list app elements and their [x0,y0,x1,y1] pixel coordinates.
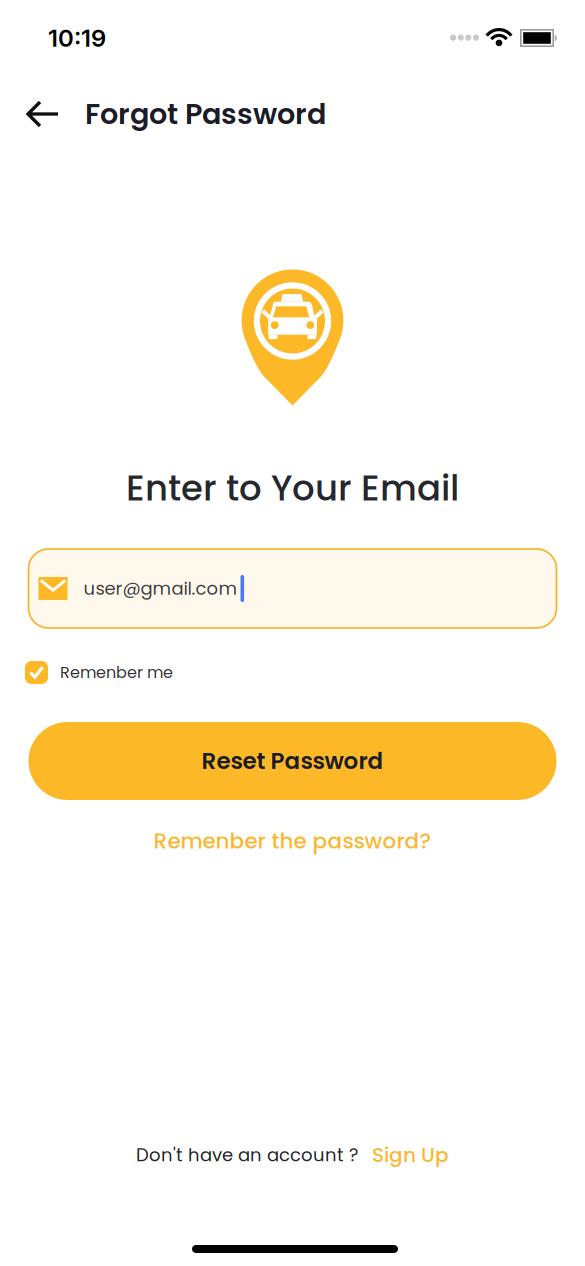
button[interactable]: Back [26,100,60,128]
staticText: Don't have an account ? [136,1142,358,1168]
button[interactable]: Remenber the password? [153,826,431,856]
button[interactable]: Reset Password [28,722,556,800]
staticText: Forgot Password [85,94,326,134]
staticText: Reset Password [201,745,383,777]
button[interactable]: Sign Up [372,1141,449,1169]
button[interactable]: Remenber me [0,661,585,684]
staticText: user@gmail.com [83,576,237,601]
button[interactable]: user@gmail.com [28,549,556,628]
staticText: Remenber the password? [153,826,431,856]
staticText: 10:19 [48,23,106,52]
staticText: Sign Up [372,1141,449,1169]
staticText: Remenber me [60,661,173,684]
staticText: Enter to Your Email [126,463,459,513]
